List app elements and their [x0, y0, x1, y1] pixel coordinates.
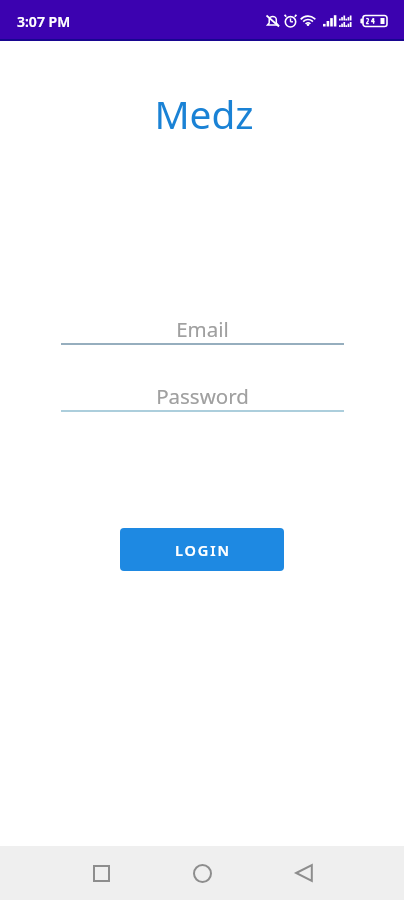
staticText: Email — [61, 315, 344, 343]
button[interactable]: Password — [61, 377, 344, 413]
button[interactable]: Back — [280, 849, 328, 897]
staticText: LOGIN — [175, 540, 231, 560]
button[interactable]: LOGIN — [120, 528, 284, 571]
staticText: Password — [61, 382, 344, 410]
button[interactable]: Recent apps — [77, 849, 125, 897]
staticText: Medz — [2, 88, 404, 141]
staticText: 3:07 PM — [17, 12, 71, 31]
button[interactable]: Email — [61, 310, 344, 346]
button[interactable]: Home — [178, 849, 226, 897]
